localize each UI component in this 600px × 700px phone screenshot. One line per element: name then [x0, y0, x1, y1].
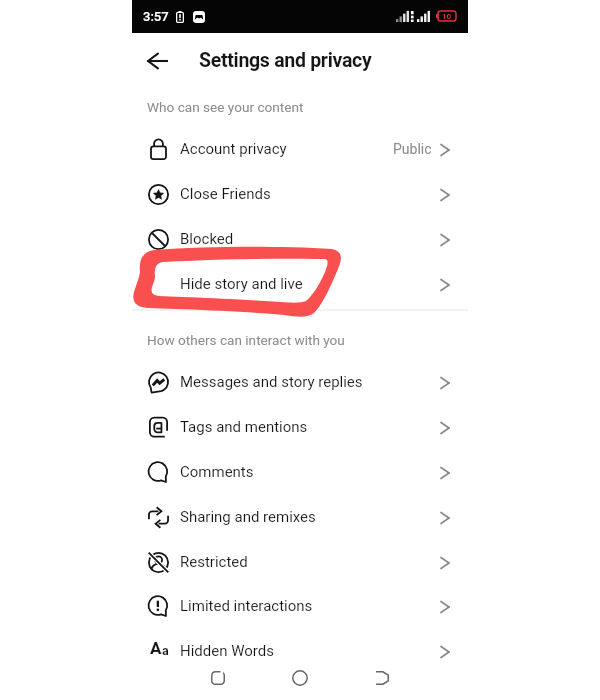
button[interactable]: Close Friends — [132, 172, 468, 217]
button[interactable]: Back — [138, 41, 178, 81]
button[interactable]: Recent apps — [202, 662, 234, 694]
staticText: a — [162, 643, 169, 658]
button[interactable]: Hide story and live — [132, 262, 468, 307]
button[interactable]: Comments — [132, 450, 468, 495]
button[interactable]: Home — [284, 662, 316, 694]
staticText: Restricted — [180, 553, 248, 571]
button[interactable]: A — [132, 629, 468, 674]
staticText: Messages and story replies — [180, 373, 363, 391]
button[interactable]: Account privacy — [132, 127, 468, 172]
staticText: Who can see your content — [147, 99, 304, 115]
button[interactable]: Sharing and remixes — [132, 495, 468, 540]
button[interactable]: Back — [366, 662, 398, 694]
button[interactable]: Limited interactions — [132, 584, 468, 629]
button[interactable]: Blocked — [132, 217, 468, 262]
staticText: 10 — [442, 12, 452, 21]
staticText: Close Friends — [180, 185, 271, 203]
staticText: Settings and privacy — [199, 49, 372, 72]
staticText: How others can interact with you — [147, 332, 345, 348]
button[interactable]: Messages and story replies — [132, 360, 468, 405]
staticText: Blocked — [180, 230, 234, 248]
staticText: Comments — [180, 463, 254, 481]
staticText: Public — [393, 141, 432, 157]
staticText: A — [150, 638, 162, 658]
staticText: Sharing and remixes — [180, 508, 316, 526]
staticText: Hidden Words — [180, 642, 275, 660]
button[interactable]: Tags and mentions — [132, 405, 468, 450]
button[interactable]: Restricted — [132, 540, 468, 585]
staticText: 3:57 — [143, 9, 169, 24]
staticText: Hide story and live — [180, 275, 303, 293]
staticText: Account privacy — [180, 140, 287, 158]
staticText: Limited interactions — [180, 597, 313, 615]
staticText: Tags and mentions — [180, 418, 308, 436]
